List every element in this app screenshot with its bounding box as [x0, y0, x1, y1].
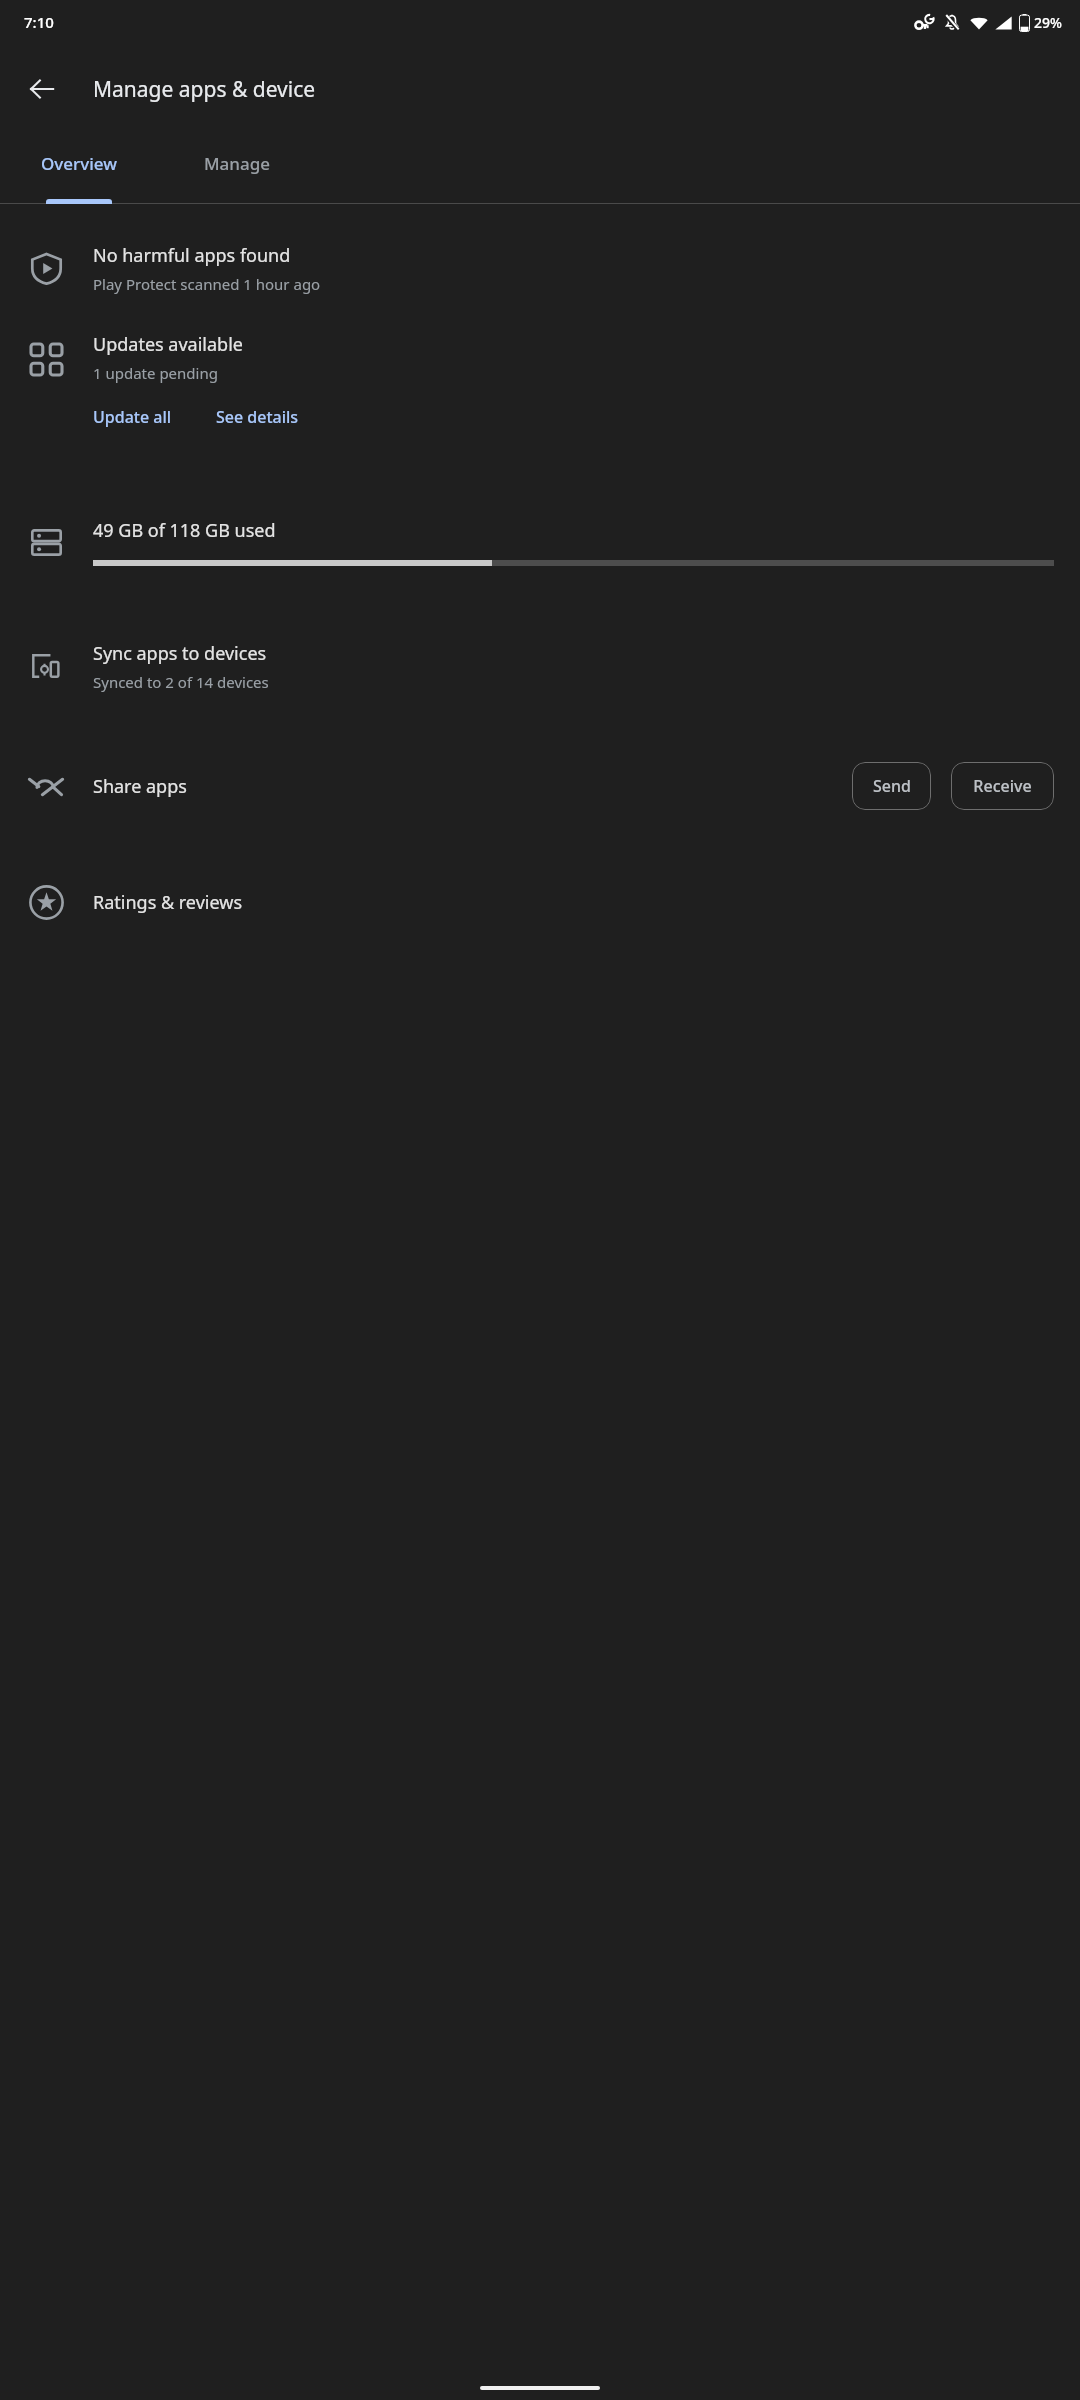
button[interactable]: Ratings & reviews [0, 846, 1080, 958]
staticText: 49 GB of 118 GB used [93, 518, 276, 543]
button[interactable]: Update all [93, 403, 172, 431]
button[interactable]: Send [852, 762, 931, 810]
button[interactable]: Manage [158, 133, 316, 204]
staticText: Update all [93, 406, 172, 428]
button[interactable]: Updates available [93, 332, 243, 383]
staticText: 1 update pending [93, 363, 218, 383]
staticText: Play Protect scanned 1 hour ago [93, 274, 321, 294]
button[interactable]: See details [216, 403, 299, 431]
button[interactable]: Back [18, 65, 66, 113]
staticText: Send [873, 775, 911, 797]
staticText: Manage [204, 152, 271, 175]
staticText: 7:10 [24, 12, 54, 32]
button[interactable]: Receive [951, 762, 1054, 810]
staticText: Updates available [93, 332, 243, 357]
staticText: Receive [973, 775, 1032, 797]
button[interactable]: No harmful apps found [0, 218, 1080, 318]
staticText: 29% [1034, 13, 1062, 32]
button[interactable]: 49 GB of 118 GB used [0, 478, 1080, 606]
staticText: Share apps [93, 774, 187, 799]
button[interactable]: Sync apps to devices [0, 606, 1080, 726]
staticText: Manage apps & device [93, 75, 316, 104]
staticText: No harmful apps found [93, 243, 291, 268]
button[interactable]: Overview [0, 133, 158, 204]
staticText: Overview [41, 152, 117, 175]
staticText: Synced to 2 of 14 devices [93, 672, 269, 692]
staticText: Sync apps to devices [93, 641, 267, 666]
staticText: See details [216, 406, 299, 428]
staticText: Ratings & reviews [93, 890, 243, 915]
